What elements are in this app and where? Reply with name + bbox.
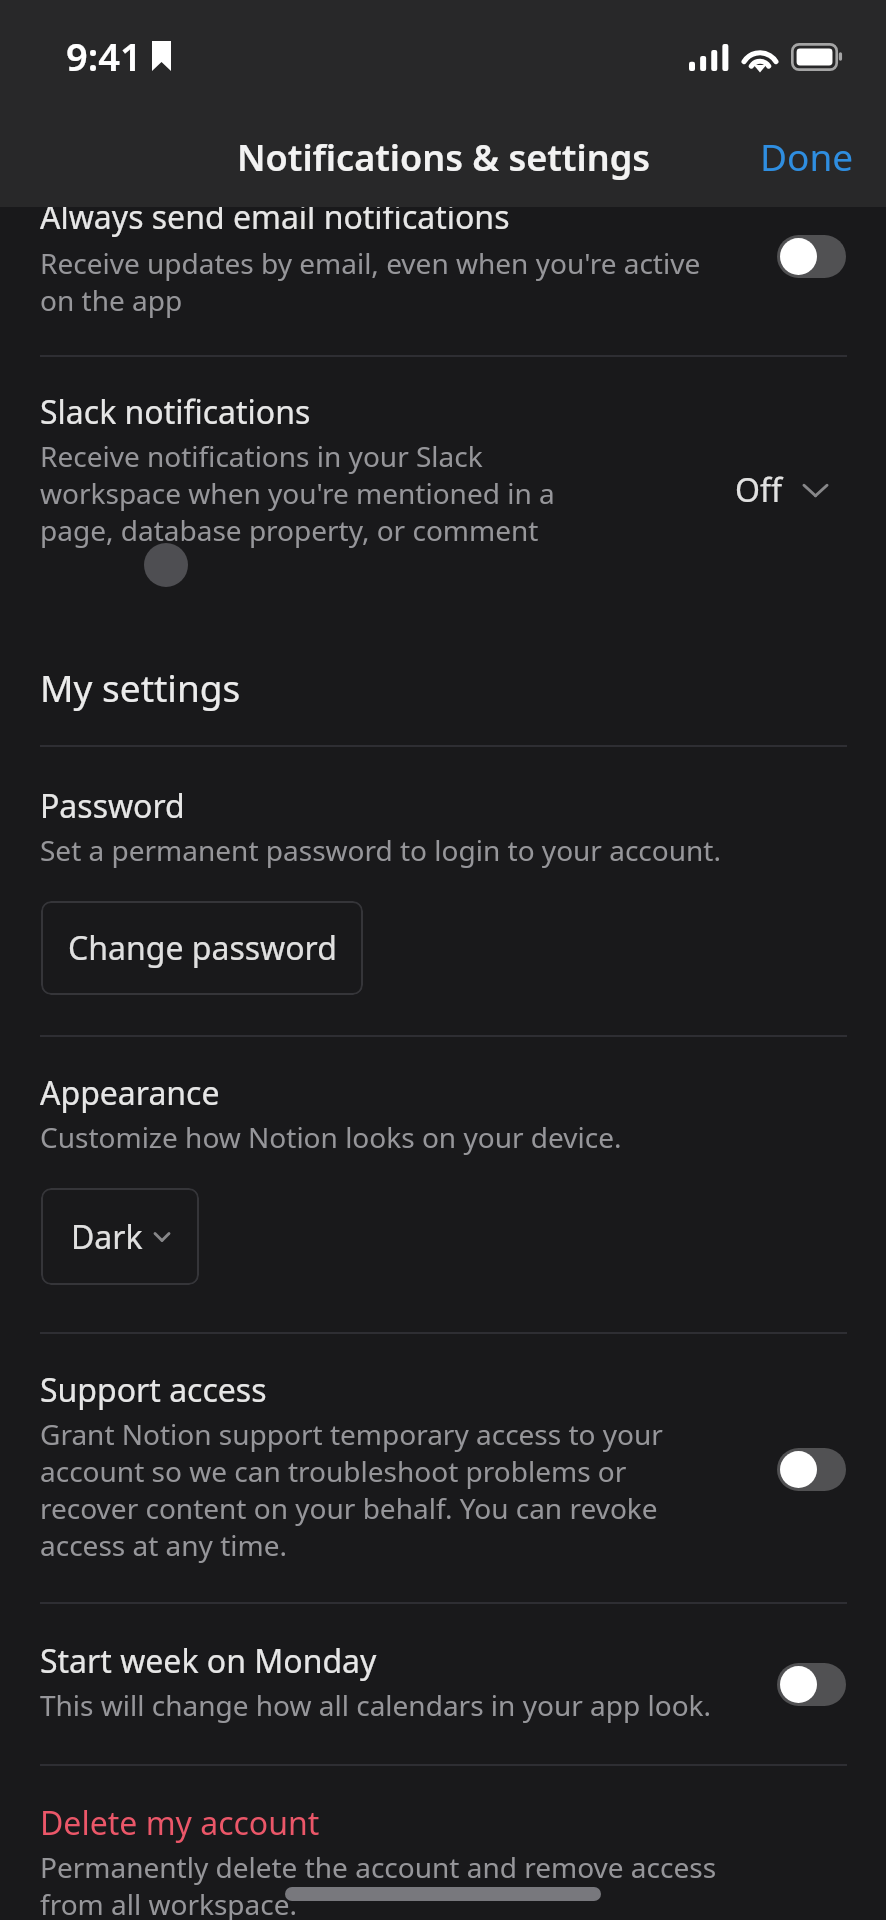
button[interactable]: Change password xyxy=(41,901,363,995)
button[interactable]: Always send email notifications xyxy=(40,195,730,319)
staticText: Receive updates by email, even when you'… xyxy=(40,244,730,319)
staticText: Always send email notifications xyxy=(40,195,510,239)
button[interactable]: Toggle Always send email notifications, … xyxy=(777,235,846,278)
staticText: Grant Notion support temporary access to… xyxy=(40,1415,680,1564)
staticText: Support access xyxy=(40,1368,267,1412)
staticText: This will change how all calendars in yo… xyxy=(40,1686,712,1724)
staticText: My settings xyxy=(40,662,241,712)
staticText: Notifications & settings xyxy=(237,133,650,182)
button[interactable]: Delete my account xyxy=(40,1801,720,1920)
staticText: Receive notifications in your Slack work… xyxy=(40,437,600,549)
button[interactable]: Support access xyxy=(40,1368,680,1564)
staticText: Set a permanent password to login to you… xyxy=(40,831,721,869)
staticText: Slack notifications xyxy=(40,390,311,434)
staticText: Customize how Notion looks on your devic… xyxy=(40,1118,622,1156)
button[interactable]: Slack notifications: Off xyxy=(727,460,836,520)
staticText: Change password xyxy=(68,926,337,970)
button[interactable]: Slack notifications xyxy=(40,390,600,549)
staticText: Done xyxy=(760,131,854,181)
button[interactable]: Done xyxy=(722,117,886,195)
button[interactable]: Dark xyxy=(41,1188,199,1285)
staticText: Permanently delete the account and remov… xyxy=(40,1848,720,1920)
staticText: 9:41 xyxy=(66,30,142,82)
staticText: Start week on Monday xyxy=(40,1639,377,1683)
button[interactable]: Toggle Start week on Monday, currently o… xyxy=(777,1663,846,1706)
staticText: Dark xyxy=(71,1215,143,1259)
staticText: Appearance xyxy=(40,1071,220,1115)
staticText: Off xyxy=(735,468,783,512)
button[interactable]: Start week on Monday xyxy=(40,1639,740,1724)
staticText: Password xyxy=(40,784,185,828)
button[interactable]: Toggle Support access, currently off xyxy=(777,1448,846,1491)
staticText: Delete my account xyxy=(40,1801,320,1845)
